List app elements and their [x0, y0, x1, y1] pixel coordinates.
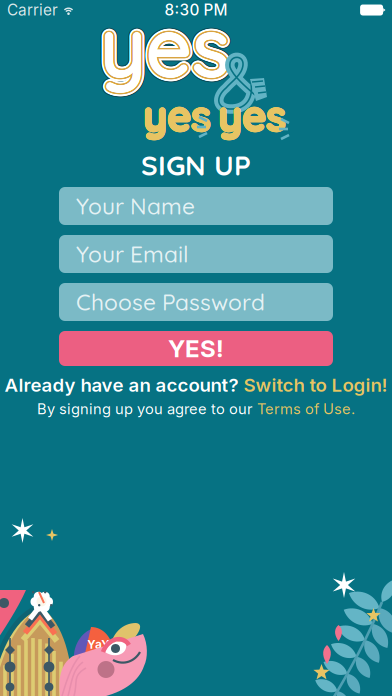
- staticText: yes: [98, 0, 228, 97]
- button[interactable]: Your Name: [59, 187, 333, 225]
- staticText: yes: [218, 91, 286, 143]
- staticText: SIGN UP: [141, 147, 251, 182]
- staticText: yes: [102, 0, 232, 97]
- staticText: yes: [103, 0, 233, 92]
- staticText: yes: [95, 0, 225, 94]
- staticText: 8:30 PM: [164, 1, 227, 19]
- staticText: yes: [142, 90, 210, 142]
- staticText: yes: [103, 0, 233, 93]
- staticText: yes: [219, 90, 287, 142]
- staticText: yes: [95, 0, 225, 93]
- staticText: yes: [142, 91, 210, 143]
- staticText: By signing up you agree to our: [37, 400, 253, 418]
- staticText: yes: [100, 0, 230, 95]
- staticText: yes: [100, 0, 230, 98]
- staticText: Your Email: [76, 240, 189, 268]
- staticText: yes: [99, 0, 229, 92]
- staticText: yes: [101, 0, 231, 96]
- staticText: yes: [95, 0, 225, 97]
- staticText: yes: [102, 0, 232, 92]
- staticText: yes: [100, 0, 230, 95]
- staticText: yes: [96, 0, 226, 98]
- staticText: yes: [101, 0, 231, 92]
- staticText: yes: [98, 0, 228, 91]
- staticText: yes: [102, 1, 232, 101]
- staticText: yes: [102, 0, 232, 100]
- staticText: yes: [217, 89, 285, 141]
- staticText: yes: [103, 0, 233, 100]
- staticText: yes: [101, 0, 231, 96]
- staticText: yes: [100, 0, 230, 95]
- staticText: yes: [99, 0, 229, 91]
- staticText: yes: [100, 0, 230, 94]
- staticText: yes: [98, 0, 228, 100]
- button[interactable]: By signing up you agree to our: [0, 400, 392, 418]
- staticText: Already have an account?: [4, 374, 238, 396]
- staticText: yes: [96, 0, 226, 100]
- staticText: yes: [96, 0, 226, 95]
- staticText: yes: [100, 0, 230, 97]
- button[interactable]: Your Email: [59, 235, 333, 273]
- staticText: yes: [144, 89, 212, 141]
- staticText: yes: [96, 0, 226, 96]
- staticText: yes: [97, 0, 227, 99]
- staticText: yes: [142, 89, 210, 141]
- staticText: yes: [219, 90, 287, 142]
- staticText: yes: [103, 0, 233, 94]
- staticText: yes: [102, 0, 232, 95]
- staticText: yes: [99, 0, 229, 96]
- staticText: yes: [99, 0, 229, 96]
- button[interactable]: Already have an account?: [0, 374, 392, 396]
- staticText: Terms of Use.: [257, 400, 355, 418]
- staticText: yes: [104, 0, 234, 95]
- staticText: yes: [217, 90, 285, 142]
- staticText: yes: [104, 0, 234, 99]
- staticText: yes: [142, 89, 210, 141]
- staticText: yes: [100, 0, 230, 94]
- staticText: yes: [98, 1, 228, 101]
- staticText: yes: [102, 0, 232, 94]
- staticText: yes: [96, 0, 226, 97]
- staticText: yes: [104, 0, 234, 96]
- staticText: yes: [99, 0, 229, 94]
- staticText: yes: [99, 1, 229, 101]
- staticText: yes: [98, 0, 228, 94]
- staticText: yes: [217, 89, 285, 141]
- staticText: yes: [144, 90, 212, 142]
- button[interactable]: YES!: [59, 331, 333, 366]
- staticText: yes: [217, 90, 285, 142]
- staticText: yes: [101, 0, 231, 94]
- staticText: yes: [99, 0, 229, 100]
- staticText: yes: [218, 89, 286, 141]
- staticText: yes: [143, 91, 211, 143]
- staticText: yes: [95, 0, 225, 96]
- staticText: Carrier: [7, 1, 58, 19]
- staticText: yes: [103, 0, 233, 98]
- staticText: yes: [219, 89, 287, 141]
- staticText: yes: [217, 91, 285, 143]
- staticText: yes: [105, 0, 235, 96]
- staticText: yes: [100, 0, 230, 96]
- staticText: Your Name: [76, 192, 195, 220]
- button[interactable]: Choose Password: [59, 283, 333, 321]
- staticText: yes: [101, 0, 231, 98]
- staticText: yes: [143, 91, 211, 143]
- staticText: yes: [96, 0, 226, 92]
- staticText: yes: [101, 0, 231, 96]
- staticText: yes: [218, 89, 286, 141]
- staticText: yes: [99, 0, 229, 96]
- staticText: yes: [105, 0, 235, 97]
- staticText: yes: [102, 0, 232, 96]
- staticText: yes: [103, 0, 233, 99]
- staticText: yes: [100, 0, 230, 95]
- staticText: yes: [104, 0, 234, 93]
- staticText: yes: [98, 0, 228, 96]
- staticText: yes: [100, 0, 230, 96]
- staticText: yes: [98, 0, 228, 92]
- staticText: yes: [100, 0, 230, 97]
- staticText: yes: [101, 0, 231, 91]
- staticText: yes: [101, 1, 231, 101]
- staticText: YaYY: [87, 637, 119, 651]
- staticText: yes: [99, 0, 229, 98]
- staticText: yes: [144, 90, 212, 142]
